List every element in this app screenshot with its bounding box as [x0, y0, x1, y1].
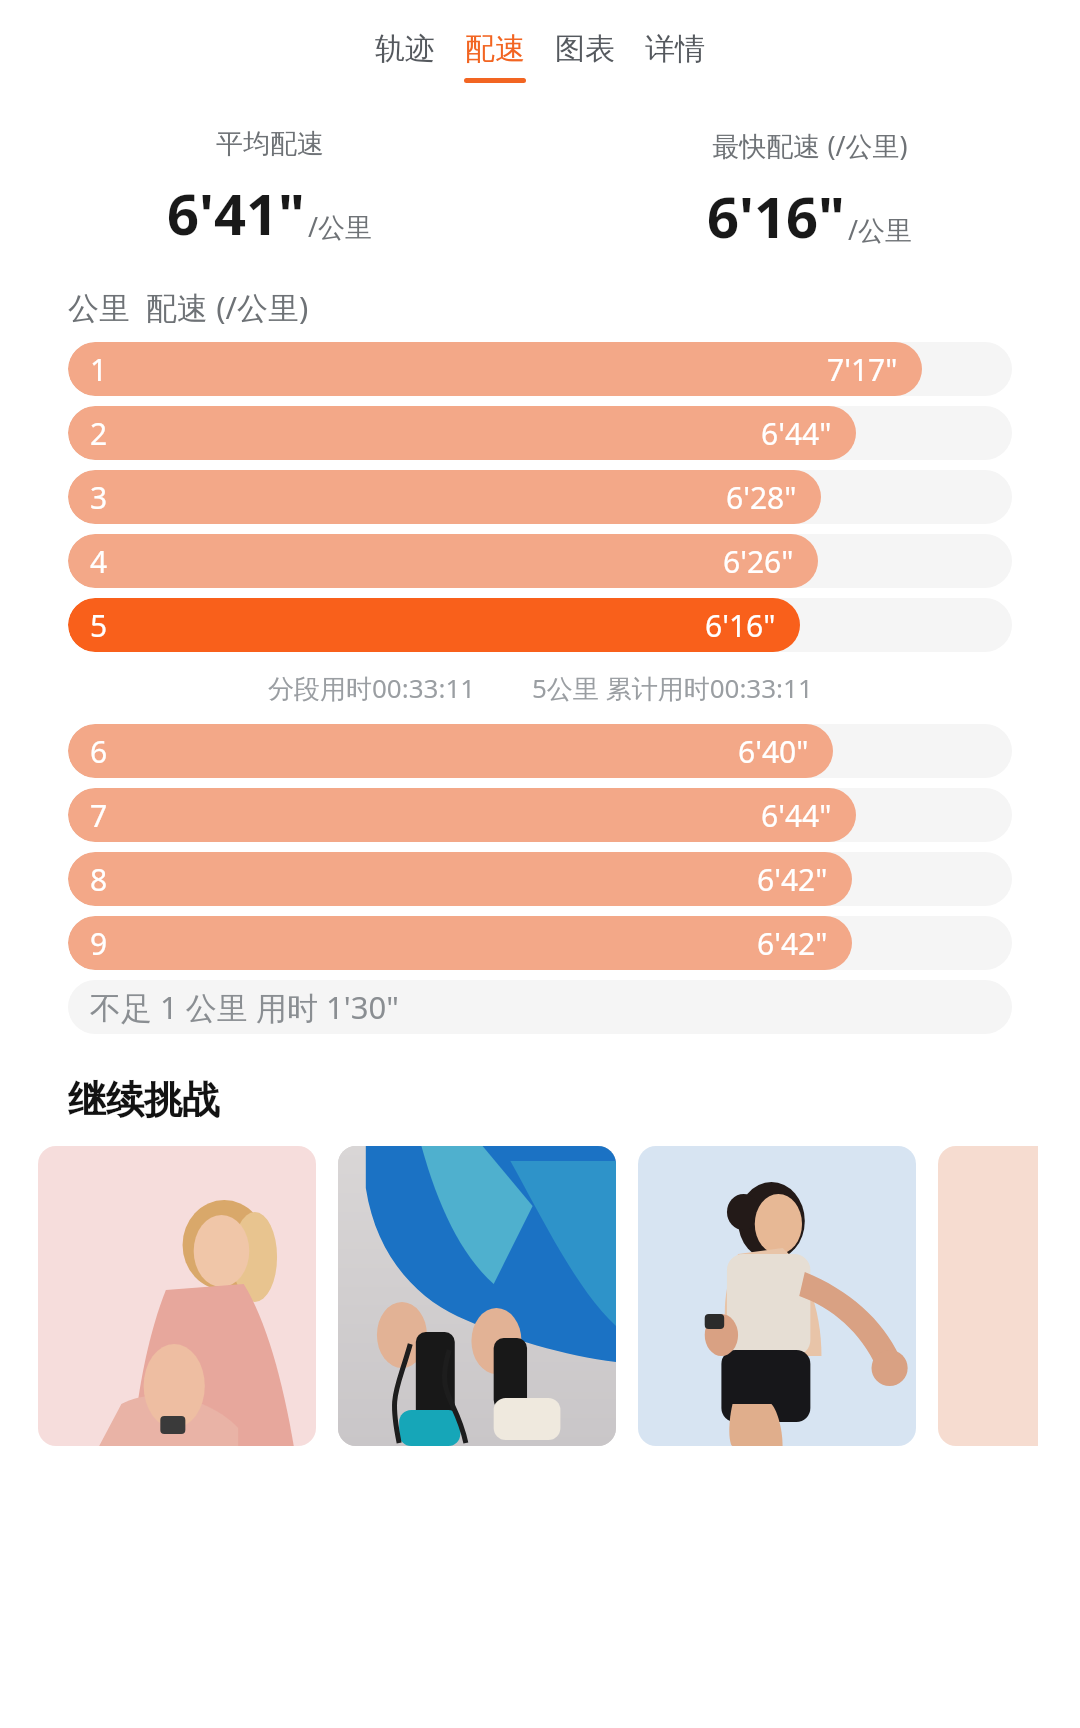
staticText: /公里	[848, 211, 913, 248]
button[interactable]: 配速	[460, 28, 530, 85]
button[interactable]: 4	[68, 534, 1012, 588]
staticText: 9	[90, 923, 108, 964]
staticText: 3	[90, 477, 108, 518]
staticText: 8	[90, 859, 108, 900]
staticText: 6'26"	[723, 541, 794, 582]
button[interactable]: 不足 1 公里 用时 1'30"	[68, 980, 1012, 1034]
staticText: 6'16"	[705, 605, 776, 646]
staticText: 轨迹	[375, 30, 435, 68]
button[interactable]: 2	[68, 406, 1012, 460]
button[interactable]: 3	[68, 470, 1012, 524]
staticText: 不足 1 公里 用时 1'30"	[90, 986, 399, 1028]
staticText: 详情	[645, 30, 705, 68]
staticText: 6'28"	[726, 477, 797, 518]
button[interactable]	[938, 1146, 1038, 1446]
staticText: 图表	[555, 30, 615, 68]
staticText: 5公里 累计用时00:33:11	[532, 670, 813, 706]
staticText: 7	[90, 795, 108, 836]
button[interactable]: 图表	[550, 28, 620, 85]
staticText: 6'42"	[757, 859, 828, 900]
staticText: 6'44"	[761, 413, 832, 454]
staticText: 最快配速 (/公里)	[712, 127, 908, 164]
staticText: 6'16"	[707, 178, 845, 254]
button[interactable]: 轨迹	[370, 28, 440, 85]
staticText: 分段用时00:33:11	[268, 670, 476, 706]
button[interactable]: 8	[68, 852, 1012, 906]
staticText: 6'42"	[757, 923, 828, 964]
staticText: 2	[90, 413, 108, 454]
button[interactable]: Challenge: stretching	[38, 1146, 316, 1446]
staticText: 6'41"	[167, 175, 305, 251]
button[interactable]: 7	[68, 788, 1012, 842]
staticText: /公里	[308, 208, 373, 245]
button[interactable]: 详情	[640, 28, 710, 85]
button[interactable]: Challenge: running	[638, 1146, 916, 1446]
staticText: 继续挑战	[68, 1076, 220, 1124]
staticText: 4	[90, 541, 108, 582]
staticText: 1	[90, 349, 108, 390]
staticText: 5	[90, 605, 108, 646]
staticText: 6'40"	[738, 731, 809, 772]
staticText: 6'44"	[761, 795, 832, 836]
staticText: 6	[90, 731, 108, 772]
staticText: 平均配速	[216, 127, 324, 161]
staticText: 公里 配速 (/公里)	[68, 286, 309, 328]
button[interactable]: 5	[68, 598, 1012, 652]
button[interactable]: 1	[68, 342, 1012, 396]
button[interactable]: Challenge: jump rope	[338, 1146, 616, 1446]
staticText: 配速	[465, 30, 525, 68]
button[interactable]: 9	[68, 916, 1012, 970]
button[interactable]: 6	[68, 724, 1012, 778]
staticText: 7'17"	[827, 349, 898, 390]
